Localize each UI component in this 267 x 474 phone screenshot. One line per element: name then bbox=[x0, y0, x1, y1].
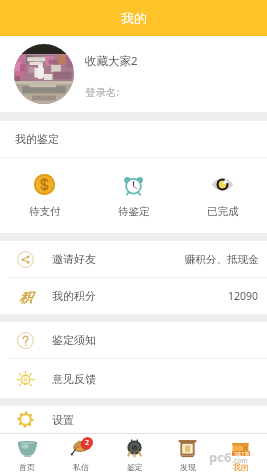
staticText: 飞速下载 bbox=[233, 451, 249, 456]
staticText: 我的鉴定 bbox=[15, 132, 59, 146]
staticText: 我的积分 bbox=[52, 289, 96, 303]
staticText: 12090 bbox=[228, 289, 259, 303]
staticText: 赚积分、抵现金 bbox=[185, 253, 259, 266]
staticText: 2 bbox=[85, 438, 90, 448]
button[interactable]: 已完成 bbox=[178, 158, 267, 233]
button[interactable]: 意见反馈 bbox=[0, 359, 267, 398]
staticText: 首页 bbox=[19, 462, 35, 472]
staticText: 私信 bbox=[73, 462, 89, 472]
button[interactable]: 鉴定 bbox=[108, 434, 161, 474]
staticText: 待鉴定 bbox=[118, 205, 150, 218]
button[interactable]: 首页 bbox=[0, 434, 54, 474]
staticText: pc6 bbox=[209, 448, 232, 466]
button[interactable]: 发现 bbox=[161, 434, 214, 474]
staticText: 我的 bbox=[121, 10, 147, 26]
button[interactable]: 待支付 bbox=[0, 158, 89, 233]
staticText: 发现 bbox=[180, 462, 196, 472]
button[interactable]: 积 bbox=[0, 278, 267, 314]
button[interactable]: 邀请好友 bbox=[0, 241, 267, 277]
staticText: 我的 bbox=[233, 462, 249, 472]
button[interactable]: 2 bbox=[54, 434, 108, 474]
button[interactable]: 待鉴定 bbox=[89, 158, 178, 233]
button[interactable]: 设置 bbox=[0, 406, 267, 433]
staticText: 收藏大家2 bbox=[85, 53, 138, 69]
button[interactable]: 我的 bbox=[214, 434, 267, 474]
button[interactable]: 收藏大家2 bbox=[0, 36, 267, 112]
staticText: .com bbox=[232, 456, 248, 465]
staticText: 设置 bbox=[52, 413, 74, 427]
staticText: 积 bbox=[19, 289, 32, 305]
staticText: 意见反馈 bbox=[52, 372, 96, 386]
staticText: 鉴定须知 bbox=[52, 333, 96, 347]
staticText: 鉴定 bbox=[127, 462, 143, 472]
staticText: 待支付 bbox=[29, 205, 61, 218]
staticText: 邀请好友 bbox=[52, 252, 96, 266]
staticText: 已完成 bbox=[207, 205, 239, 218]
button[interactable]: 鉴定须知 bbox=[0, 322, 267, 358]
staticText: 登录名: bbox=[85, 85, 120, 99]
